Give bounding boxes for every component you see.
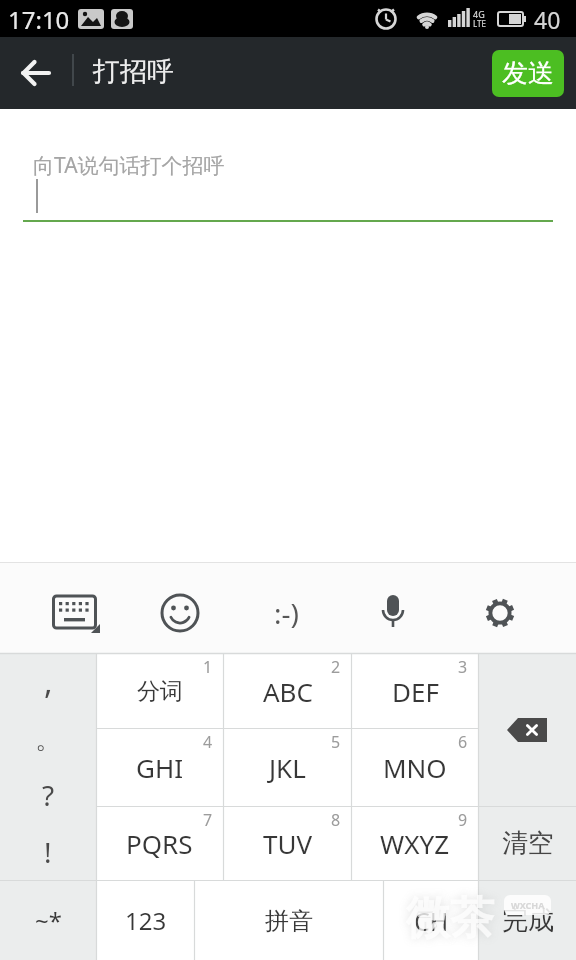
staticText: 微茶 [406,891,494,946]
staticText: 4G [473,8,485,20]
button[interactable] [479,654,576,806]
staticText: TUV [263,826,313,861]
button[interactable]: JKL [224,729,351,806]
button[interactable]: DEF [352,654,478,728]
staticText: CH [414,904,449,938]
button[interactable]: :-) [252,582,320,644]
button[interactable]: 发送 [492,50,564,97]
staticText: GHI [136,750,184,785]
staticText: 6 [458,731,468,753]
staticText: JKL [269,750,306,785]
staticText: , [44,660,53,704]
button[interactable]: ! [0,824,96,880]
button[interactable]: ? [0,767,96,823]
staticText: ABC [263,674,313,709]
staticText: ? [42,776,55,814]
staticText: 发送 [502,57,554,90]
staticText: 完成 [502,904,554,937]
staticText: LTE [473,18,486,29]
button[interactable]: 完成 [479,881,576,960]
button[interactable] [8,45,64,101]
staticText: 拼音 [265,906,313,936]
button[interactable]: CH [384,881,478,960]
staticText: 打招呼 [93,55,174,89]
button[interactable]: 拼音 [195,881,383,960]
staticText: 3 [458,656,468,678]
staticText: 1 [203,656,213,678]
staticText: 40 [534,4,561,35]
staticText: 8 [331,809,341,831]
staticText: WXYZ [380,826,450,861]
button[interactable]: PQRS [96,807,223,880]
button[interactable] [40,582,112,644]
staticText: 。 [35,723,61,756]
button[interactable]: 。 [0,711,96,767]
staticText: 123 [125,904,167,937]
staticText: WXCHA [511,899,545,911]
staticText: 2 [331,656,341,678]
staticText: ! [44,833,52,871]
staticText: DEF [392,674,439,709]
button[interactable]: GHI [96,729,223,806]
staticText: 清空 [502,827,554,860]
staticText: 5 [331,731,341,753]
staticText: 分词 [137,677,183,706]
staticText: :-) [274,594,299,632]
staticText: 向TA说句话打个招呼 [33,151,225,180]
button[interactable] [359,582,427,644]
button[interactable] [466,582,534,644]
staticText: MNO [383,750,447,785]
button[interactable]: 向TA说句话打个招呼 [0,109,576,562]
button[interactable] [146,582,214,644]
button[interactable]: 清空 [479,807,576,880]
button[interactable]: WXYZ [352,807,478,880]
button[interactable]: , [0,654,96,710]
button[interactable]: MNO [352,729,478,806]
staticText: PQRS [126,826,193,861]
staticText: 9 [458,809,468,831]
staticText: 4 [203,731,213,753]
button[interactable]: 123 [97,881,194,960]
staticText: 17:10 [8,3,70,36]
button[interactable]: TUV [224,807,351,880]
button[interactable]: ~* [0,881,96,960]
button[interactable]: ABC [224,654,351,728]
button[interactable]: 分词 [96,654,223,728]
staticText: 7 [203,809,213,831]
staticText: ~* [35,904,62,937]
